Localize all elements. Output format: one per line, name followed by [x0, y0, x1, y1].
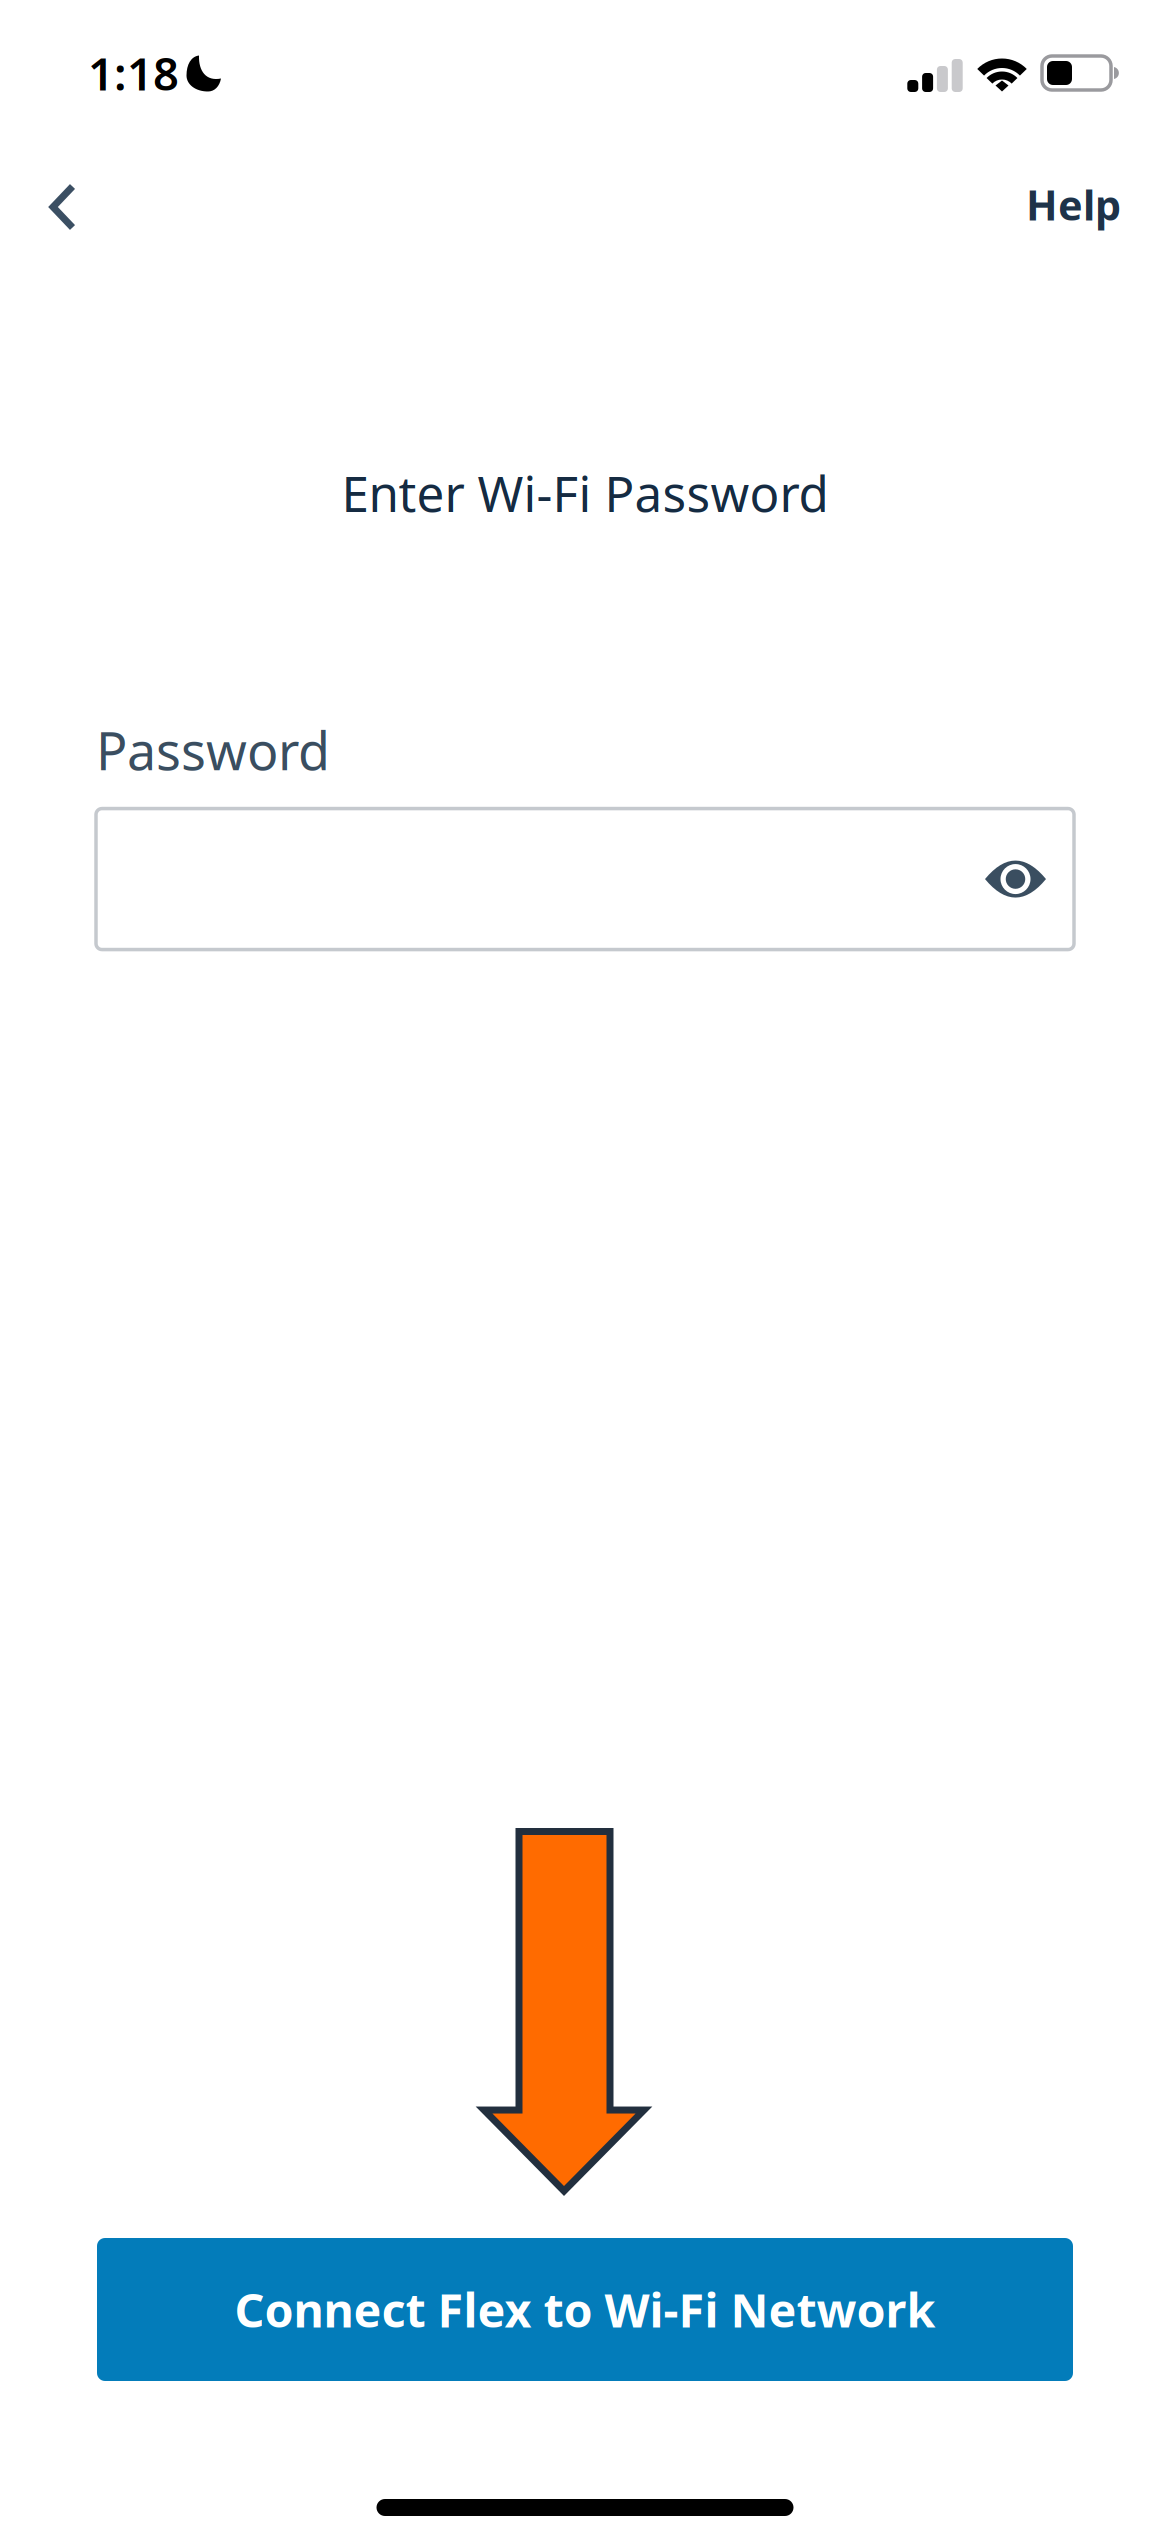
button[interactable]: Password: [96, 809, 1074, 950]
button[interactable]: Back: [15, 159, 111, 255]
staticText: Password: [96, 715, 330, 785]
staticText: Help: [1026, 177, 1121, 232]
button[interactable]: Show password: [957, 809, 1074, 950]
staticText: Connect Flex to Wi-Fi Network: [234, 2278, 935, 2340]
staticText: Enter Wi-Fi Password: [341, 460, 828, 525]
button[interactable]: Help: [981, 159, 1121, 255]
staticText: 1:18: [88, 43, 179, 103]
button[interactable]: Connect Flex to Wi-Fi Network: [97, 2238, 1073, 2381]
